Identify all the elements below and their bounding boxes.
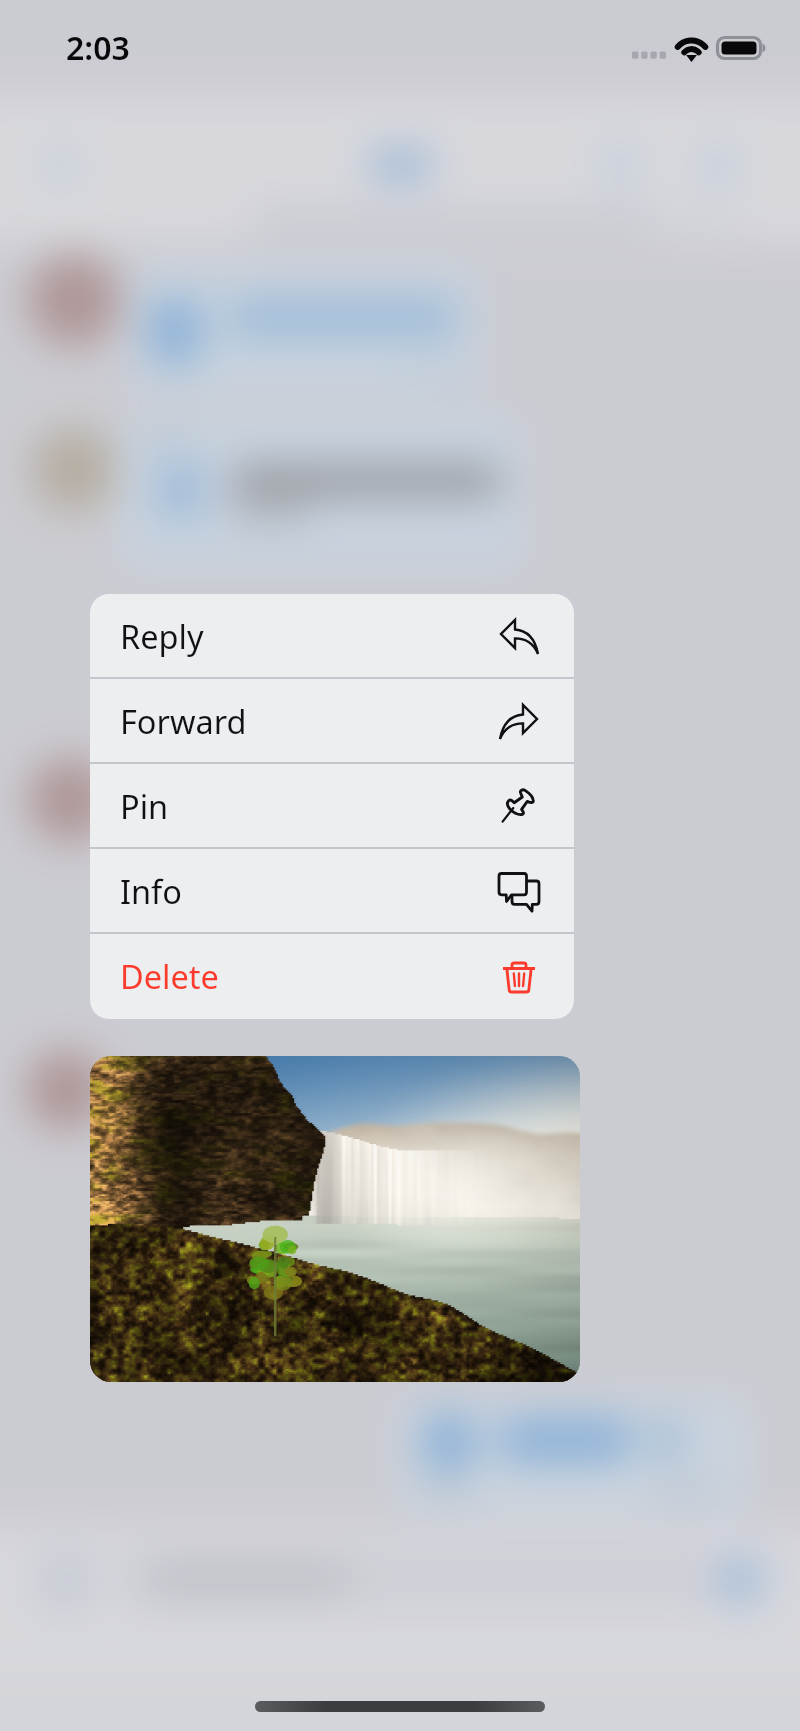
button[interactable]: Delete <box>90 934 574 1019</box>
staticText: Delete <box>120 954 219 998</box>
staticText: Reply <box>120 614 204 658</box>
staticText: Pin <box>120 784 169 828</box>
button[interactable]: Forward <box>90 679 574 764</box>
button[interactable]: Pin <box>90 764 574 849</box>
staticText: 2:03 <box>66 26 130 70</box>
staticText: Info <box>120 869 182 913</box>
button[interactable]: Photo of a waterfall <box>90 1056 580 1382</box>
staticText: Forward <box>120 699 247 743</box>
button[interactable]: Info <box>90 849 574 934</box>
button[interactable]: Reply <box>90 594 574 679</box>
